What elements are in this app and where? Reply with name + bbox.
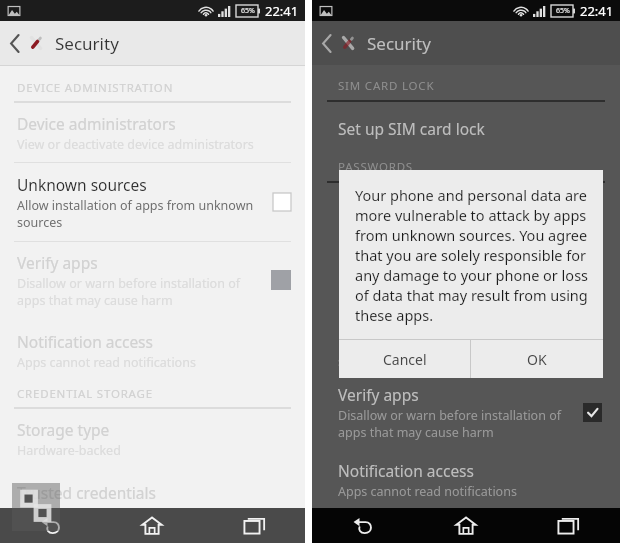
button[interactable]: Recent apps bbox=[203, 508, 305, 543]
button[interactable]: Set up SIM card lock bbox=[312, 118, 620, 139]
staticText: 65% bbox=[241, 6, 255, 16]
staticText: Apps cannot read notifications bbox=[338, 483, 517, 500]
staticText: Security bbox=[55, 32, 119, 55]
staticText: Trusted credentials bbox=[17, 482, 156, 499]
button[interactable]: Back bbox=[312, 508, 414, 543]
staticText: Security bbox=[367, 32, 431, 55]
button[interactable]: Security bbox=[0, 21, 305, 65]
button[interactable]: Security bbox=[312, 21, 620, 65]
button[interactable]: OK bbox=[471, 340, 603, 378]
button[interactable]: Verify apps bbox=[312, 384, 620, 440]
button[interactable]: Unknown sources checkbox bbox=[273, 193, 291, 211]
staticText: Device administrators bbox=[17, 113, 176, 134]
staticText: Unknown sources bbox=[17, 174, 147, 195]
button[interactable]: Cancel bbox=[339, 340, 470, 378]
staticText: View or deactivate device administrators bbox=[17, 136, 254, 153]
staticText: sources bbox=[338, 353, 384, 370]
staticText: Apps cannot read notifications bbox=[17, 354, 196, 371]
staticText: 65% bbox=[556, 6, 570, 16]
button[interactable]: Unknown sources bbox=[0, 163, 305, 241]
staticText: OK bbox=[527, 350, 547, 369]
staticText: PASSWORDS bbox=[338, 159, 413, 175]
staticText: Notification access bbox=[17, 331, 153, 352]
staticText: Verify apps bbox=[338, 384, 419, 405]
button[interactable]: Storage type bbox=[0, 409, 305, 468]
staticText: SIM CARD LOCK bbox=[338, 78, 435, 94]
staticText: Hardware-backed bbox=[17, 442, 121, 459]
staticText: 22:41 bbox=[265, 2, 299, 20]
staticText: Your phone and personal data are more vu… bbox=[355, 185, 589, 325]
button[interactable]: Notification access bbox=[0, 321, 305, 380]
staticText: Notification access bbox=[338, 460, 474, 481]
button[interactable]: Verify apps checkbox bbox=[583, 403, 602, 422]
button[interactable]: Device administrators bbox=[0, 103, 305, 162]
staticText: CREDENTIAL STORAGE bbox=[17, 386, 153, 402]
staticText: 22:41 bbox=[580, 2, 614, 20]
button[interactable]: Home bbox=[101, 508, 203, 543]
staticText: Verify apps bbox=[17, 252, 98, 273]
staticText: Disallow or warn before installation of … bbox=[338, 407, 562, 440]
staticText: Allow installation of apps from unknown … bbox=[17, 197, 254, 230]
button[interactable]: Trusted credentials bbox=[0, 472, 305, 508]
button[interactable]: Home bbox=[414, 508, 517, 543]
staticText: DEVICE ADMINISTRATION bbox=[17, 80, 174, 96]
button[interactable]: Verify apps bbox=[0, 242, 305, 317]
staticText: Cancel bbox=[383, 350, 427, 369]
button[interactable]: Recent apps bbox=[517, 508, 620, 543]
staticText: Storage type bbox=[17, 419, 110, 440]
button[interactable]: Back bbox=[0, 508, 101, 543]
staticText: Disallow or warn before installation of … bbox=[17, 275, 241, 308]
button[interactable]: Notification access bbox=[312, 460, 620, 500]
